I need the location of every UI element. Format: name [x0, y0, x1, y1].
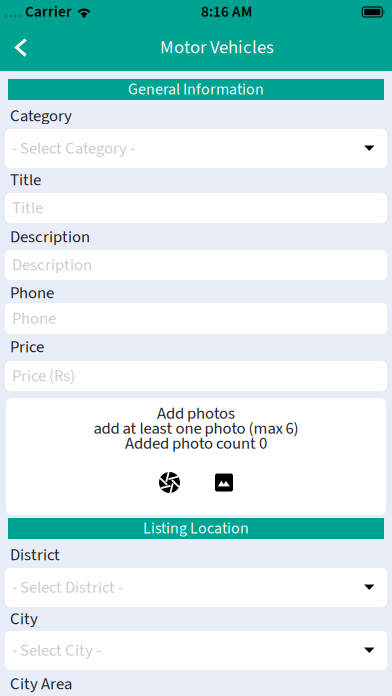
staticText: - Select City - [12, 639, 101, 662]
staticText: District [10, 543, 60, 567]
button[interactable]: Choose from library [215, 472, 233, 493]
button[interactable]: - Select District - [0, 568, 392, 607]
button[interactable]: - Select City - [0, 631, 392, 670]
staticText: Phone [12, 307, 56, 330]
staticText: Phone [10, 281, 54, 305]
button[interactable]: Back [0, 24, 42, 71]
staticText: Price (Rs) [12, 364, 75, 388]
staticText: Listing Location [143, 517, 249, 540]
staticText: - Select Category - [12, 137, 135, 160]
staticText: Title [10, 168, 41, 192]
staticText: Title [12, 196, 43, 220]
staticText: Description [10, 225, 90, 249]
staticText: Add photos [157, 402, 235, 425]
button[interactable]: Price (Rs) [0, 361, 392, 391]
staticText: 8:16 AM [201, 1, 252, 23]
button[interactable]: Description [0, 250, 392, 280]
staticText: City [10, 607, 38, 631]
staticText: Price [10, 335, 44, 359]
button[interactable]: Phone [0, 303, 392, 334]
staticText: Description [12, 253, 92, 277]
staticText: Category [10, 104, 72, 128]
staticText: Motor Vehicles [160, 34, 274, 61]
button[interactable]: - Select Category - [0, 129, 392, 168]
button[interactable]: Title [0, 193, 392, 223]
button[interactable]: Take photo [159, 472, 180, 493]
staticText: add at least one photo (max 6) [93, 417, 298, 440]
staticText: Added photo count 0 [125, 432, 267, 455]
staticText: General Information [128, 78, 264, 101]
staticText: Carrier [25, 1, 72, 23]
staticText: City Area [10, 672, 72, 696]
staticText: - Select District - [12, 576, 123, 599]
